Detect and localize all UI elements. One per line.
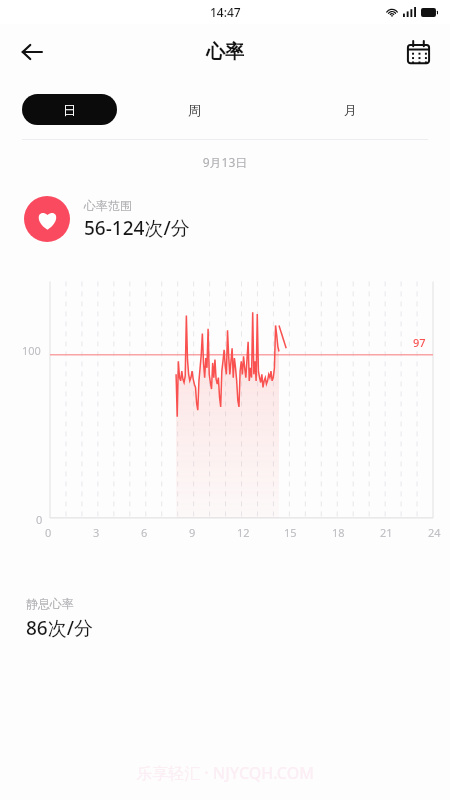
button[interactable]: Calendar [396,30,440,74]
staticText: 心率 [206,40,244,64]
staticText: 月 [344,102,357,118]
button[interactable]: 周 [117,94,272,125]
button[interactable]: 日 [22,94,117,125]
staticText: 心率范围 [84,198,132,213]
staticText: 24 [428,525,441,540]
staticText: 12 [237,525,250,540]
staticText: 0 [36,512,43,527]
staticText: 9 [189,525,196,540]
staticText: 周 [188,102,201,118]
staticText: 15 [284,525,297,540]
staticText: 100 [22,343,41,358]
staticText: 21 [380,525,393,540]
staticText: 0 [45,525,52,540]
button[interactable]: Back [10,30,54,74]
staticText: 6 [141,525,148,540]
staticText: 56-124次/分 [84,215,190,241]
staticText: 9月13日 [0,154,450,170]
staticText: 3 [93,525,100,540]
button[interactable]: 心率范围 [24,196,450,242]
button[interactable]: 月 [272,94,428,125]
staticText: 静息心率 [26,596,74,611]
staticText: 86次/分 [26,615,94,641]
staticText: 乐享轻汇 · NJYCQH.COM [0,762,450,784]
staticText: 97 [413,335,426,350]
staticText: 18 [332,525,345,540]
staticText: 14:47 [210,4,241,20]
staticText: 日 [63,102,76,118]
